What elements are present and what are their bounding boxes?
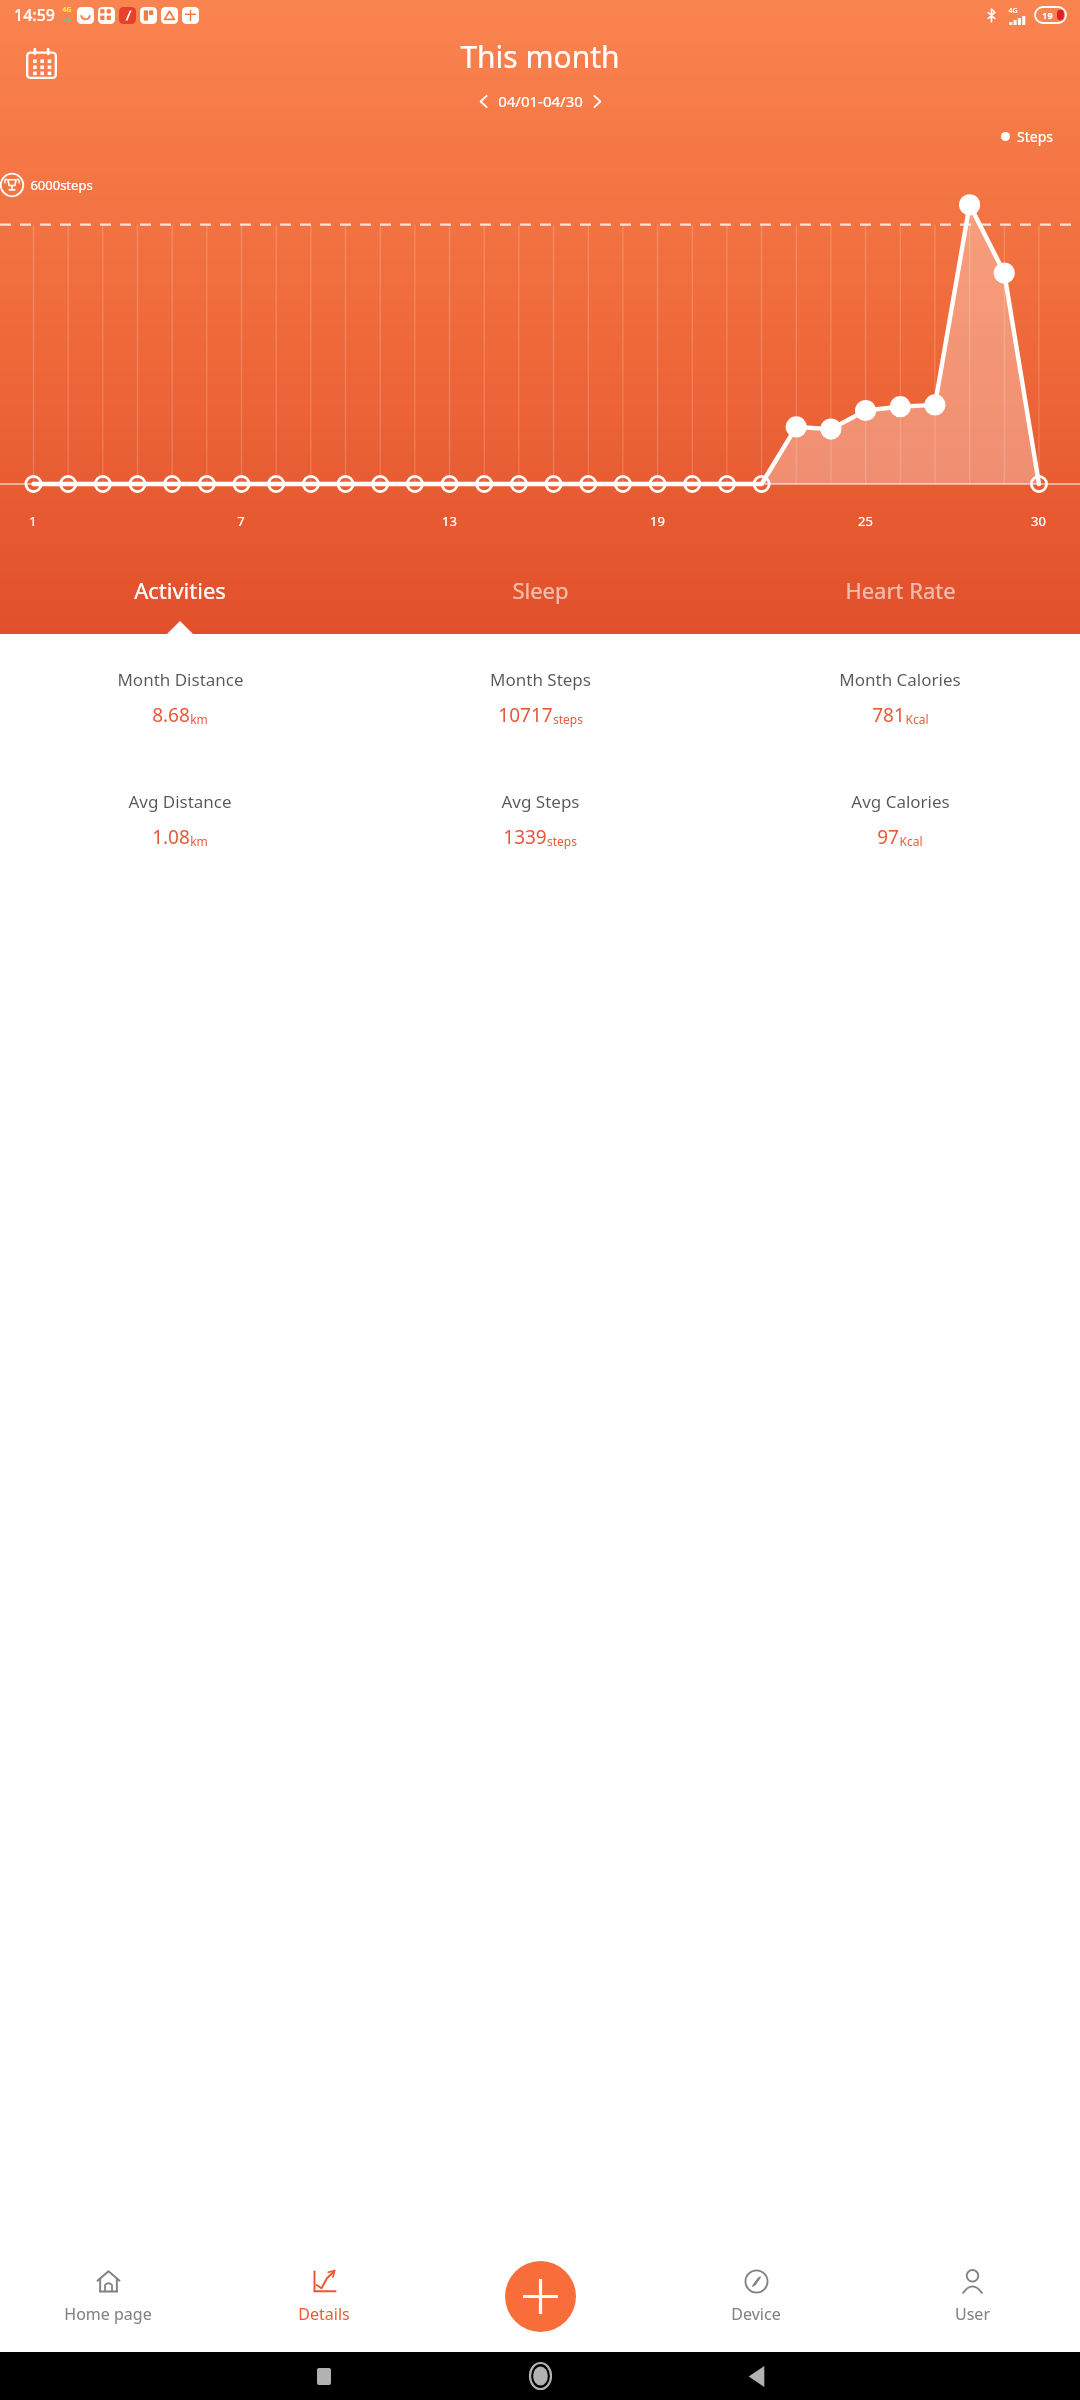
staticText: User [955, 2303, 990, 2325]
staticText: Month Distance [117, 668, 244, 691]
button[interactable]: Avg Distance [0, 790, 360, 850]
staticText: Avg Calories [851, 790, 950, 813]
button[interactable]: Sleep [360, 546, 720, 634]
staticText: Details [298, 2303, 350, 2325]
staticText: Month Calories [839, 668, 961, 691]
staticText: Heart Rate [845, 575, 956, 605]
staticText: Activities [134, 575, 226, 605]
staticText: Kcal [905, 711, 929, 727]
staticText: 4G [1008, 6, 1018, 16]
staticText: 97 [877, 824, 899, 850]
staticText: steps [547, 833, 577, 849]
staticText: 19 [650, 512, 665, 530]
button[interactable]: Details [216, 2244, 432, 2348]
staticText: Steps [1017, 127, 1053, 146]
staticText: Avg Steps [501, 790, 580, 813]
button[interactable]: Activities [0, 546, 360, 634]
staticText: 1 [29, 512, 37, 530]
staticText: 25 [858, 512, 873, 530]
staticText: 4G [62, 5, 72, 15]
staticText: 781 [872, 702, 905, 728]
button[interactable]: Month Steps [360, 668, 720, 728]
staticText: km [190, 711, 208, 727]
staticText: 14:59 [14, 4, 55, 26]
staticText: 04/01-04/30 [498, 91, 583, 111]
button[interactable]: User [864, 2244, 1080, 2348]
button[interactable]: Avg Steps [360, 790, 720, 850]
button[interactable]: Heart Rate [720, 546, 1080, 634]
staticText: Month Steps [490, 668, 591, 691]
button[interactable]: Month Distance [0, 668, 360, 728]
staticText: Avg Distance [128, 790, 232, 813]
button[interactable]: Home page [0, 2244, 216, 2348]
button[interactable]: Pick date [16, 38, 66, 88]
staticText: 6000steps [30, 176, 93, 194]
staticText: Sleep [512, 575, 569, 605]
staticText: 30 [1031, 512, 1046, 530]
button[interactable]: 04/01-04/30 [467, 89, 614, 113]
button[interactable]: Home [432, 2352, 648, 2400]
staticText: Device [731, 2303, 781, 2325]
staticText: 13 [442, 512, 457, 530]
button[interactable]: Month Calories [720, 668, 1080, 728]
button[interactable]: Device [648, 2244, 864, 2348]
staticText: 10717 [498, 702, 553, 728]
staticText: 2G [62, 15, 72, 25]
staticText: steps [553, 711, 583, 727]
staticText: 1.08 [152, 824, 190, 850]
staticText: 8.68 [152, 702, 190, 728]
staticText: 1339 [503, 824, 547, 850]
button[interactable]: Add record [505, 2261, 576, 2332]
staticText: This month [460, 36, 620, 77]
button[interactable]: Back [648, 2352, 864, 2400]
staticText: 19 [1042, 9, 1053, 21]
staticText: Home page [64, 2303, 152, 2325]
staticText: 7 [237, 512, 245, 530]
staticText: Kcal [899, 833, 923, 849]
button[interactable]: Avg Calories [720, 790, 1080, 850]
staticText: km [190, 833, 208, 849]
button[interactable]: Recents [216, 2352, 432, 2400]
